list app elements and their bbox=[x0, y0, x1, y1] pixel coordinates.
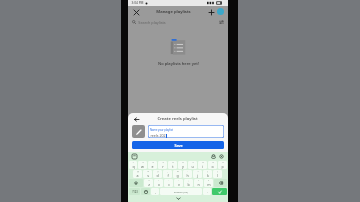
other: Search bbox=[132, 20, 136, 24]
staticText: + bbox=[197, 170, 199, 173]
button[interactable]: Emoji bbox=[141, 188, 150, 195]
button[interactable]: Backspace bbox=[214, 179, 227, 187]
button[interactable]: Back bbox=[132, 115, 140, 123]
staticText: d bbox=[156, 173, 159, 178]
staticText: ; bbox=[188, 179, 189, 182]
button[interactable]: 2 bbox=[138, 161, 147, 169]
staticText: 3:04 PM bbox=[131, 1, 144, 5]
button[interactable]: Space bbox=[160, 188, 202, 195]
button[interactable]: Clipboard bbox=[132, 154, 137, 159]
staticText: z bbox=[148, 182, 150, 187]
button[interactable]: Add playlist bbox=[207, 8, 215, 16]
button[interactable]: + bbox=[193, 170, 202, 178]
staticText: ?123 bbox=[132, 190, 138, 194]
button[interactable]: 7 bbox=[188, 161, 197, 169]
staticText: 6 bbox=[182, 161, 184, 164]
staticText: i bbox=[202, 164, 203, 169]
button[interactable]: 4 bbox=[158, 161, 167, 169]
staticText: # bbox=[147, 170, 149, 173]
staticText: Name your playlist bbox=[150, 128, 173, 132]
staticText: ( bbox=[207, 170, 208, 173]
button[interactable]: $ bbox=[153, 170, 162, 178]
staticText: u bbox=[191, 164, 194, 169]
staticText: _ bbox=[167, 170, 168, 173]
button[interactable]: 6 bbox=[178, 161, 187, 169]
staticText: 5 bbox=[172, 161, 174, 164]
staticText: h bbox=[186, 173, 189, 178]
button[interactable]: : bbox=[174, 179, 183, 187]
staticText: : bbox=[178, 179, 179, 182]
button[interactable]: Profile bbox=[217, 8, 224, 15]
staticText: n bbox=[197, 182, 200, 187]
button[interactable]: 0 bbox=[218, 161, 227, 169]
staticText: f bbox=[167, 173, 169, 178]
staticText: ! bbox=[198, 179, 199, 182]
button[interactable]: Filter bbox=[219, 20, 224, 25]
button[interactable]: - bbox=[183, 170, 192, 178]
button[interactable]: 9 bbox=[208, 161, 217, 169]
staticText: 8 bbox=[202, 161, 204, 164]
staticText: s bbox=[147, 173, 149, 178]
button[interactable]: Save bbox=[132, 141, 224, 149]
staticText: l bbox=[217, 173, 218, 178]
staticText: & bbox=[177, 170, 179, 173]
button[interactable]: . bbox=[203, 188, 211, 195]
staticText: English (US) bbox=[174, 190, 188, 193]
button[interactable]: Edit cover bbox=[132, 125, 145, 138]
staticText: 2 bbox=[142, 161, 144, 164]
button[interactable]: & bbox=[173, 170, 182, 178]
button[interactable]: Incognito bbox=[211, 154, 216, 159]
button[interactable]: Settings bbox=[219, 154, 224, 159]
button[interactable]: ? bbox=[204, 179, 213, 187]
button[interactable]: Close bbox=[132, 8, 140, 16]
button[interactable]: @ bbox=[133, 170, 142, 178]
staticText: k bbox=[207, 173, 209, 178]
staticText: p bbox=[221, 164, 224, 169]
staticText: " bbox=[158, 179, 159, 182]
staticText: Save bbox=[174, 143, 183, 148]
button[interactable]: 3 bbox=[148, 161, 157, 169]
staticText: w bbox=[141, 164, 144, 169]
staticText: b bbox=[187, 182, 190, 187]
staticText: @ bbox=[137, 170, 139, 173]
other: Hide keyboard bbox=[176, 197, 181, 200]
staticText: Search playlists bbox=[138, 20, 166, 25]
staticText: , bbox=[155, 190, 156, 194]
button[interactable]: ) bbox=[213, 170, 222, 178]
button[interactable]: ?123 bbox=[129, 188, 140, 195]
staticText: 0 bbox=[222, 161, 224, 164]
staticText: ' bbox=[168, 179, 169, 182]
staticText: q bbox=[132, 164, 135, 169]
staticText: r bbox=[162, 164, 164, 169]
staticText: v bbox=[178, 182, 180, 187]
staticText: $ bbox=[157, 170, 159, 173]
button[interactable]: Shift bbox=[129, 179, 143, 187]
staticText: No playlists here yet! bbox=[158, 61, 199, 66]
button[interactable]: # bbox=[143, 170, 152, 178]
button[interactable]: ' bbox=[164, 179, 173, 187]
staticText: c bbox=[168, 182, 170, 187]
staticText: reels 202 bbox=[150, 133, 166, 138]
staticText: g bbox=[176, 173, 179, 178]
button[interactable]: Name your playlist bbox=[148, 125, 224, 138]
button[interactable]: * bbox=[144, 179, 153, 187]
staticText: e bbox=[151, 164, 154, 169]
button[interactable]: 8 bbox=[198, 161, 207, 169]
button[interactable]: _ bbox=[163, 170, 172, 178]
button[interactable]: , bbox=[151, 188, 159, 195]
button[interactable]: " bbox=[154, 179, 163, 187]
staticText: j bbox=[197, 173, 198, 178]
button[interactable]: ( bbox=[203, 170, 212, 178]
staticText: m bbox=[207, 182, 211, 187]
staticText: Create reels playlist bbox=[157, 116, 198, 122]
button[interactable]: 1 bbox=[129, 161, 137, 169]
button[interactable]: ; bbox=[184, 179, 193, 187]
staticText: 7 bbox=[192, 161, 194, 164]
staticText: 4 bbox=[162, 161, 164, 164]
staticText: Manage playlists bbox=[156, 9, 191, 15]
staticText: 9 bbox=[212, 161, 214, 164]
button[interactable]: ! bbox=[194, 179, 203, 187]
button[interactable]: 5 bbox=[168, 161, 177, 169]
staticText: ) bbox=[217, 170, 218, 173]
button[interactable]: Enter bbox=[212, 188, 227, 195]
